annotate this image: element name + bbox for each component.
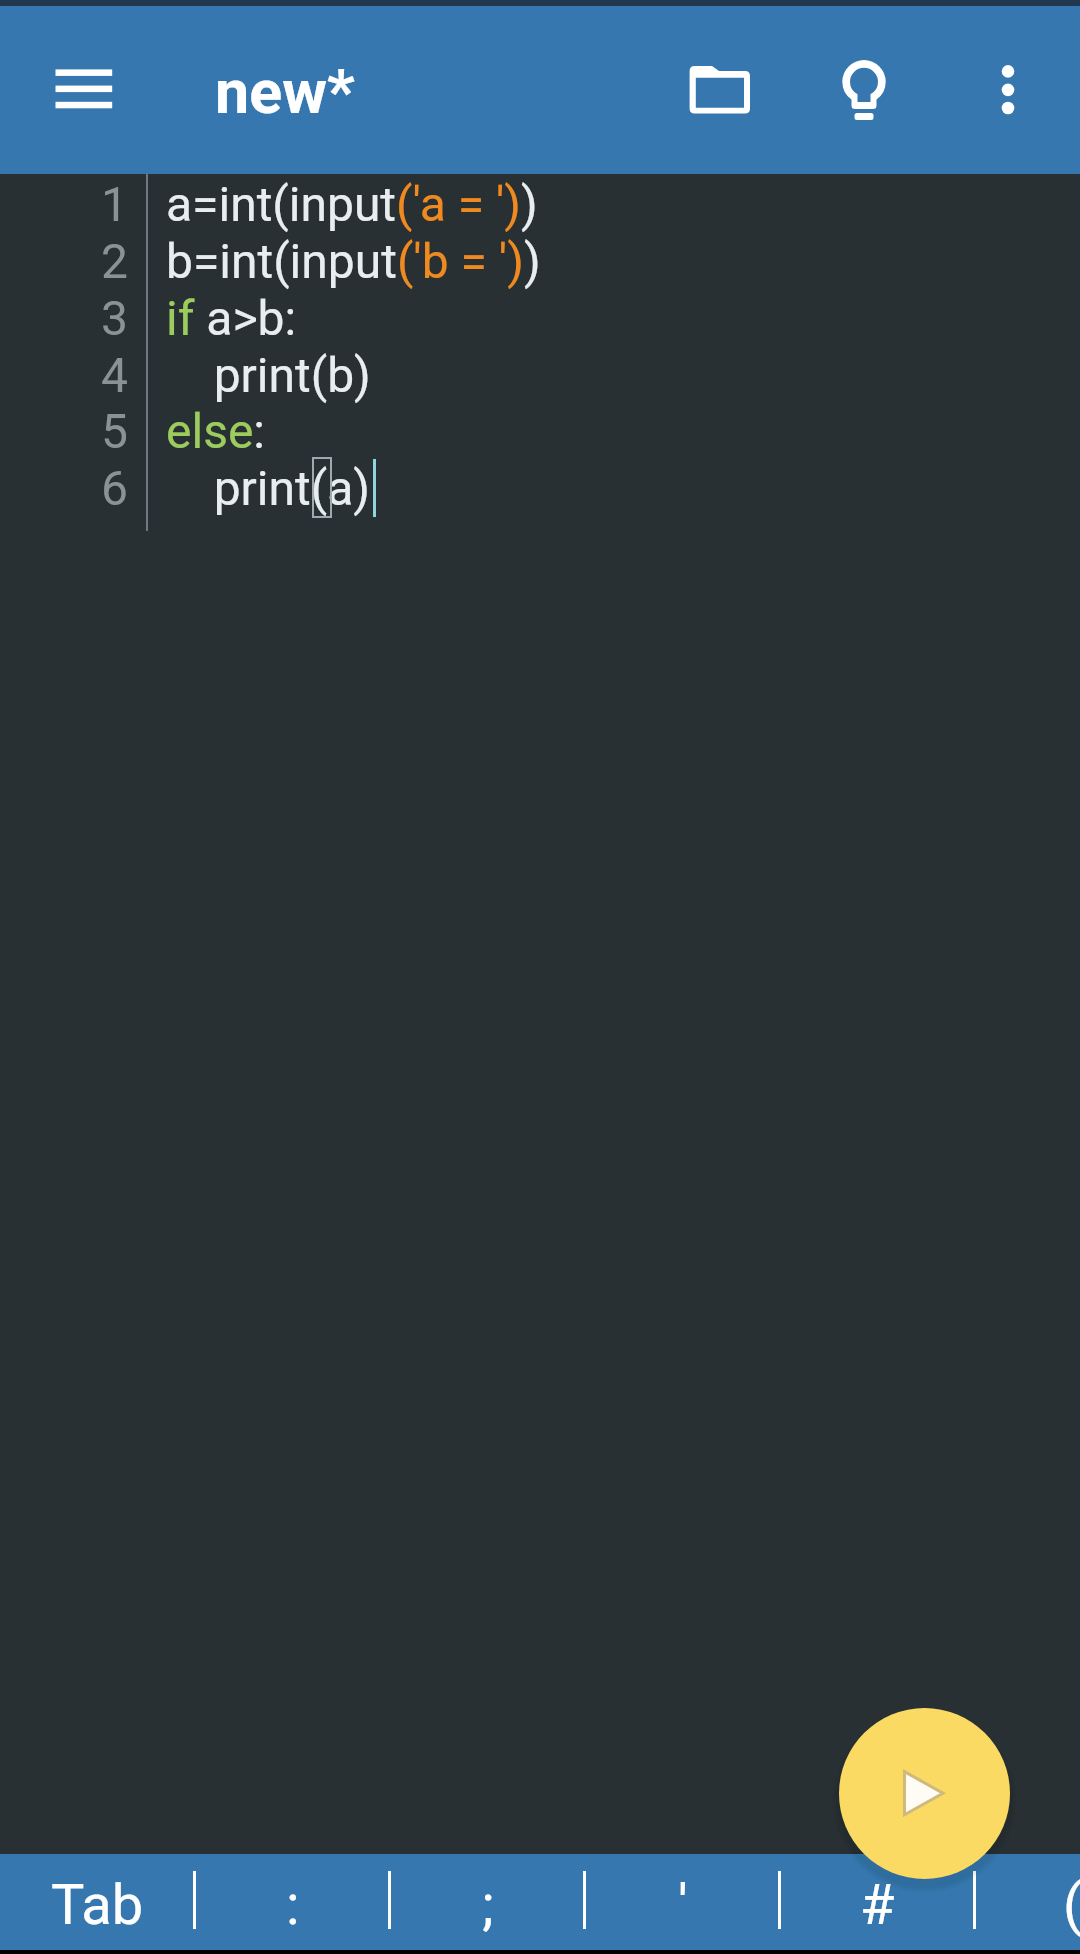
staticText: new* <box>215 56 355 127</box>
button[interactable]: More options <box>970 46 1046 122</box>
staticText: b=int(input('b = ')) <box>166 233 541 289</box>
staticText: 5 <box>88 403 128 459</box>
staticText: print(a) <box>166 460 370 516</box>
staticText: 2 <box>88 233 128 289</box>
staticText: : <box>286 1872 300 1938</box>
button[interactable]: Run <box>839 1708 1010 1879</box>
staticText: ; <box>482 1872 494 1938</box>
staticText: else: <box>166 403 265 459</box>
button[interactable]: ; <box>390 1854 585 1950</box>
staticText: ( <box>1063 1872 1080 1938</box>
staticText: 3 <box>88 290 128 346</box>
staticText: 4 <box>88 347 128 403</box>
button[interactable]: Open file <box>674 46 766 138</box>
staticText: # <box>860 1872 895 1938</box>
staticText: if a>b: <box>166 290 297 346</box>
button[interactable]: ( <box>975 1854 1080 1950</box>
staticText: Tab <box>51 1872 144 1938</box>
button[interactable]: : <box>195 1854 390 1950</box>
staticText: a=int(input('a = ')) <box>166 176 538 232</box>
button[interactable]: 1 <box>0 174 1080 1854</box>
button[interactable]: Tab <box>0 1854 195 1950</box>
staticText: print(b) <box>166 347 371 403</box>
staticText: 1 <box>88 176 128 232</box>
button[interactable]: # <box>780 1854 975 1950</box>
staticText: 6 <box>88 460 128 516</box>
staticText: ' <box>678 1872 688 1938</box>
button[interactable]: Menu <box>28 46 140 134</box>
button[interactable]: ' <box>585 1854 780 1950</box>
button[interactable]: Hints <box>832 49 896 127</box>
